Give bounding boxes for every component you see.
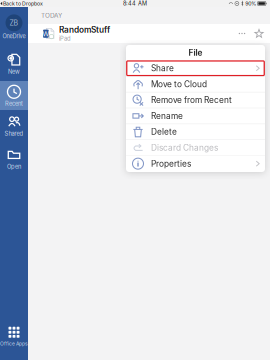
staticText: Rename [151, 111, 183, 121]
staticText: Open [7, 163, 21, 170]
button[interactable]: ZB [0, 14, 28, 40]
staticText: File [188, 48, 202, 58]
button[interactable]: Remove from Recent [126, 92, 265, 108]
staticText: 90% [245, 0, 256, 7]
button[interactable]: Recent [0, 84, 28, 108]
button[interactable]: Open [0, 147, 28, 171]
staticText: Delete [151, 127, 177, 137]
staticText: TODAY [41, 12, 62, 19]
staticText: ZB [9, 19, 18, 27]
staticText: Remove from Recent [151, 95, 232, 105]
staticText: Recent [5, 100, 23, 107]
staticText: Back to Dropbox [3, 0, 43, 7]
button[interactable]: Properties [126, 156, 265, 171]
staticText: Discard Changes [151, 143, 218, 153]
staticText: Share [151, 63, 174, 73]
button[interactable]: Office Apps [0, 324, 28, 348]
staticText: Shared [4, 130, 23, 137]
button[interactable]: More actions [235, 26, 249, 40]
staticText: OneDrive [2, 33, 25, 40]
staticText: New [8, 68, 20, 75]
button[interactable]: Rename [126, 108, 265, 124]
button[interactable]: Shared [0, 114, 28, 138]
staticText: RandomStuff [59, 25, 110, 35]
button[interactable]: Share [126, 60, 265, 76]
button[interactable]: New [0, 52, 28, 76]
staticText: Office Apps [0, 341, 28, 347]
button[interactable]: Back to Dropbox [0, 0, 43, 7]
staticText: Move to Cloud [151, 79, 207, 89]
button[interactable]: Delete [126, 124, 265, 140]
staticText: iPad [59, 35, 71, 42]
staticText: Properties [151, 159, 191, 169]
button[interactable]: Favorite [253, 27, 265, 39]
button[interactable]: W [28, 24, 270, 43]
button[interactable]: Move to Cloud [126, 76, 265, 92]
staticText: W [42, 30, 49, 38]
button[interactable]: Discard Changes [126, 140, 265, 155]
staticText: 8:44 AM [123, 0, 147, 7]
